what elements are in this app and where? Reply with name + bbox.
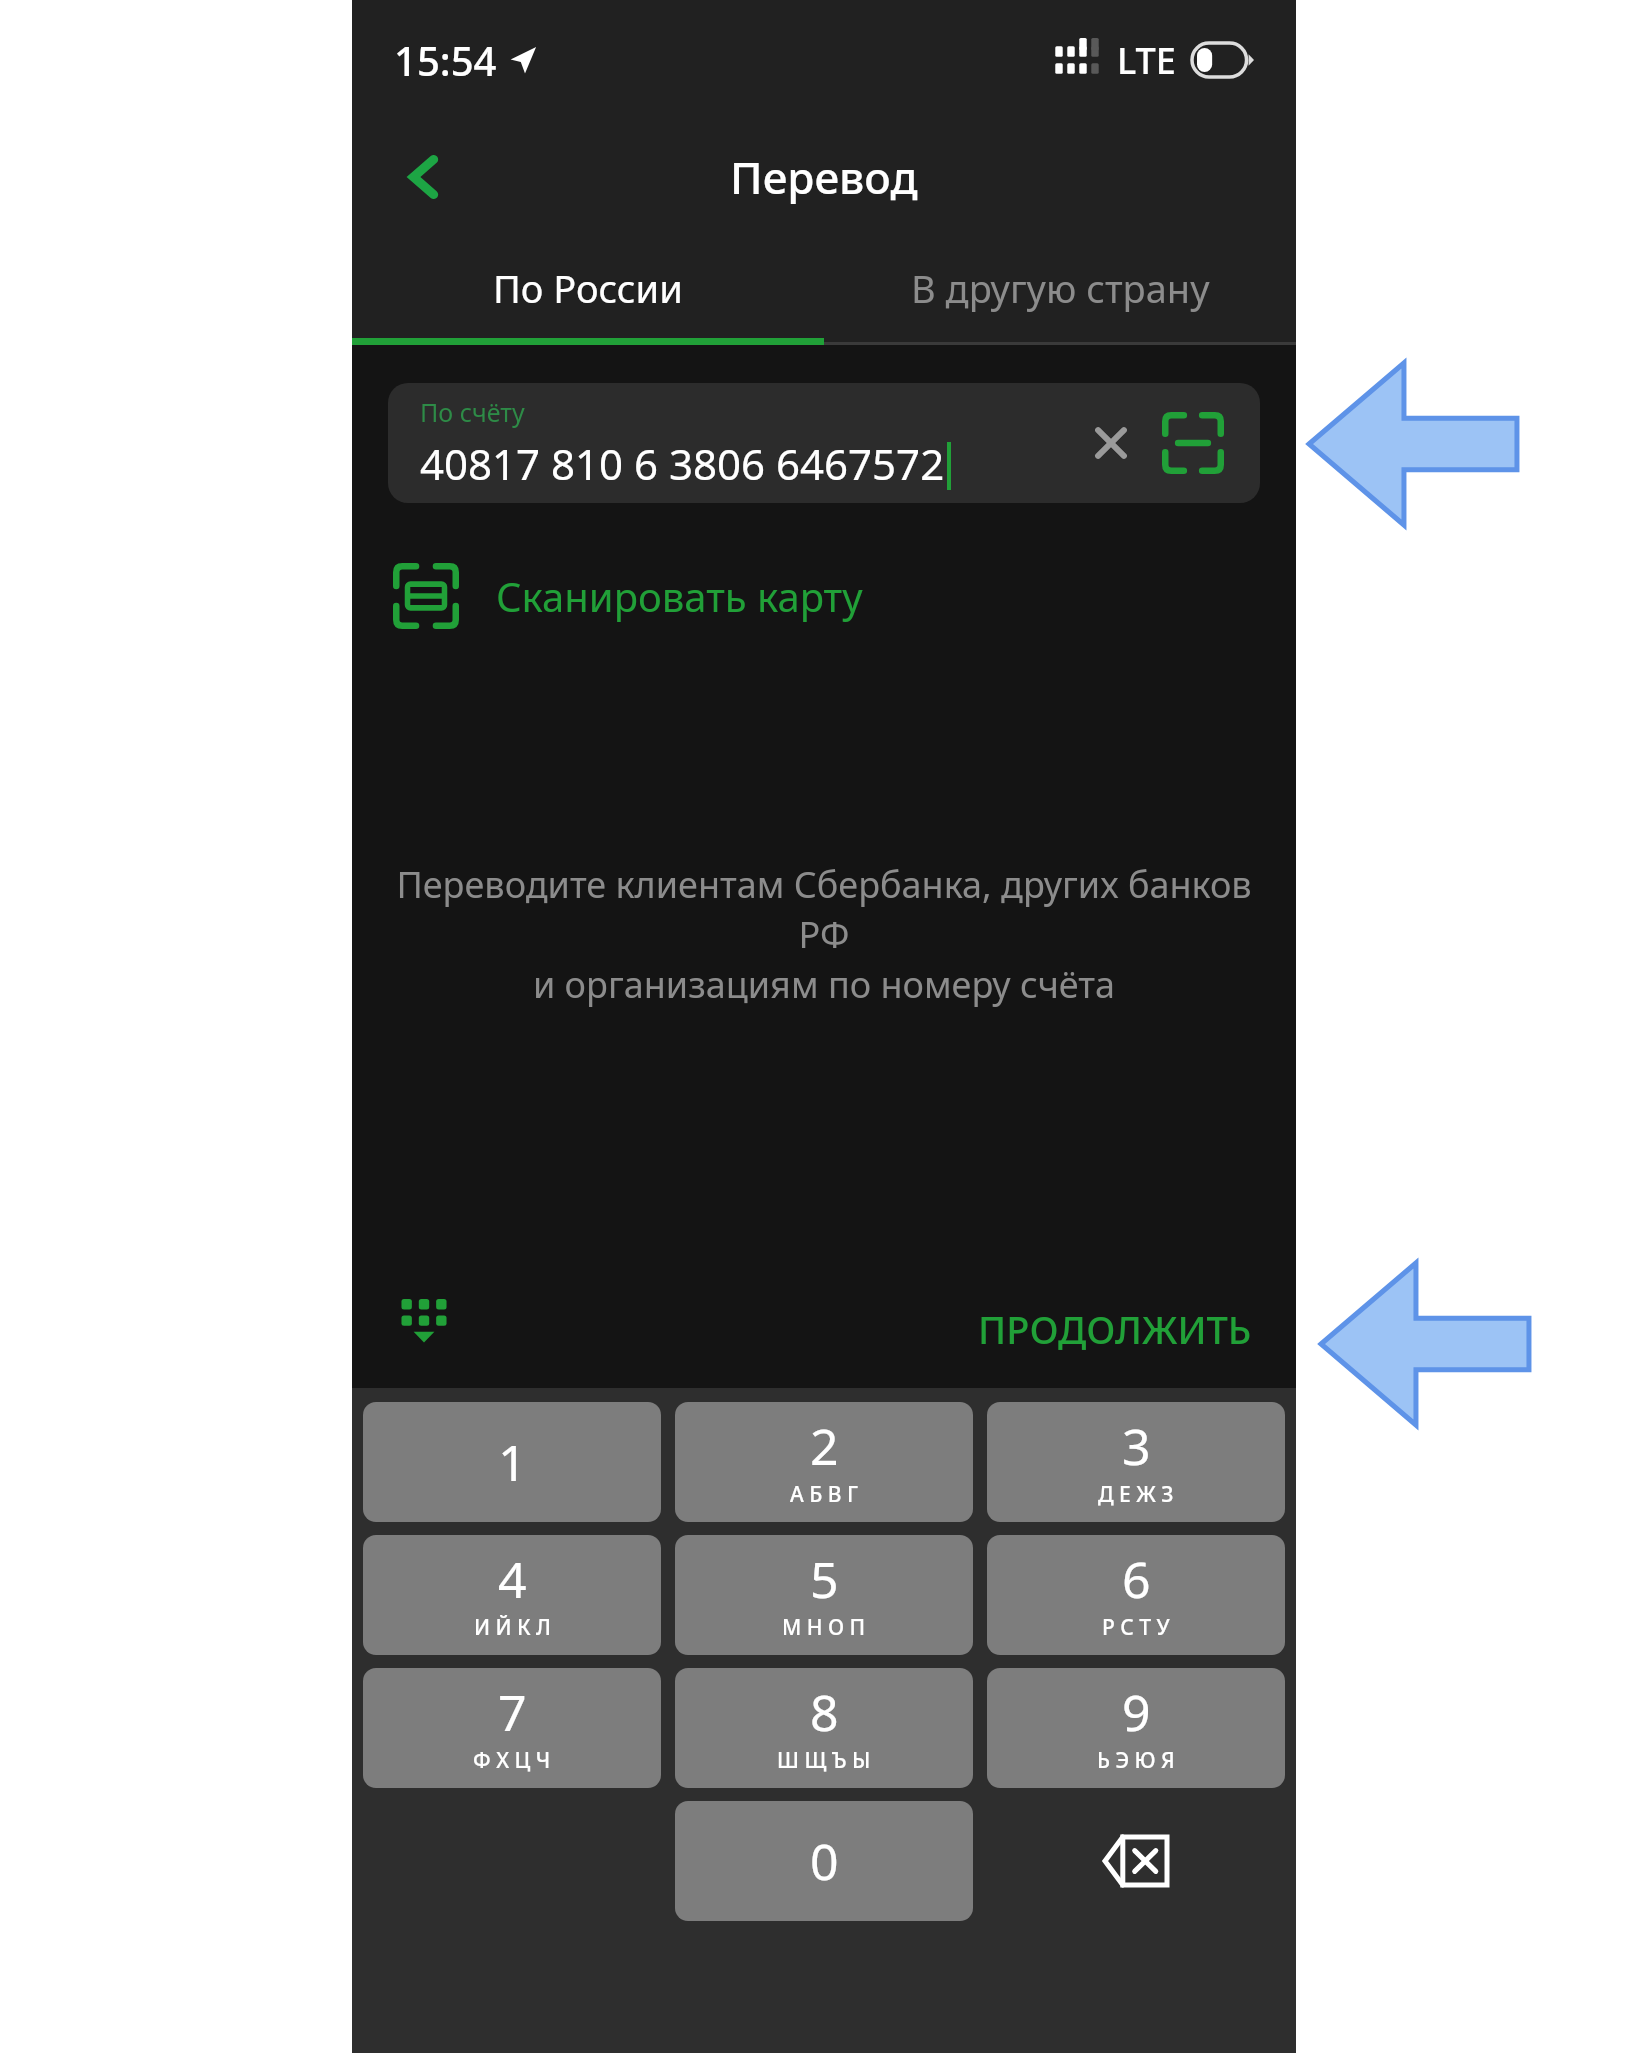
staticText: 7 — [498, 1678, 527, 1746]
button[interactable]: 6 — [987, 1535, 1285, 1655]
button[interactable]: Backspace — [980, 1801, 1292, 1921]
staticText: 40817 810 6 3806 6467572 — [420, 435, 945, 492]
button[interactable]: Scan — [1154, 404, 1232, 482]
staticText: По счёту — [420, 395, 525, 429]
button[interactable]: 9 — [987, 1668, 1285, 1788]
staticText: 5 — [810, 1545, 839, 1613]
staticText: 3 — [1122, 1412, 1151, 1480]
button[interactable]: ПРОДОЛЖИТЬ — [970, 1291, 1260, 1367]
button[interactable]: 3 — [987, 1402, 1285, 1522]
button[interactable]: Сканировать карту — [388, 541, 863, 651]
button[interactable]: 8 — [675, 1668, 973, 1788]
staticText: 8 — [810, 1678, 839, 1746]
button[interactable]: 0 — [675, 1801, 973, 1921]
staticText: Переводите клиентам Сбербанка, других ба… — [386, 860, 1262, 1009]
button[interactable]: 5 — [675, 1535, 973, 1655]
staticText: 2 — [810, 1412, 839, 1480]
button[interactable]: 2 — [675, 1402, 973, 1522]
staticText: По России — [493, 262, 683, 314]
staticText: 9 — [1122, 1678, 1151, 1746]
staticText: Д Е Ж З — [1098, 1480, 1174, 1509]
button[interactable]: По России — [352, 230, 824, 345]
staticText: М Н О П — [782, 1613, 866, 1642]
staticText: И Й К Л — [474, 1613, 551, 1642]
staticText: 4 — [498, 1545, 527, 1613]
staticText: 6 — [1122, 1545, 1151, 1613]
staticText: ПРОДОЛЖИТЬ — [978, 1303, 1252, 1355]
button[interactable]: По счёту — [388, 383, 1260, 503]
button[interactable]: 1 — [363, 1402, 661, 1522]
staticText: 15:54 — [394, 33, 497, 87]
button[interactable]: Back — [376, 129, 472, 225]
button[interactable]: Hide keyboard — [388, 1284, 460, 1374]
staticText: 1 — [498, 1428, 527, 1496]
staticText: Сканировать карту — [496, 569, 863, 623]
staticText: В другую страну — [911, 262, 1210, 314]
staticText: А Б В Г — [790, 1480, 858, 1509]
button[interactable]: 7 — [363, 1668, 661, 1788]
staticText: Ь Э Ю Я — [1097, 1746, 1175, 1775]
staticText: Ш Щ Ъ Ы — [777, 1746, 871, 1775]
button[interactable]: В другую страну — [824, 230, 1296, 345]
staticText: LTE — [1117, 36, 1176, 85]
button[interactable]: Clear — [1076, 408, 1146, 478]
staticText: 0 — [810, 1827, 839, 1895]
staticText: Ф Х Ц Ч — [473, 1746, 551, 1775]
staticText: Р С Т У — [1102, 1613, 1170, 1642]
button[interactable]: 4 — [363, 1535, 661, 1655]
staticText: Перевод — [730, 147, 918, 207]
